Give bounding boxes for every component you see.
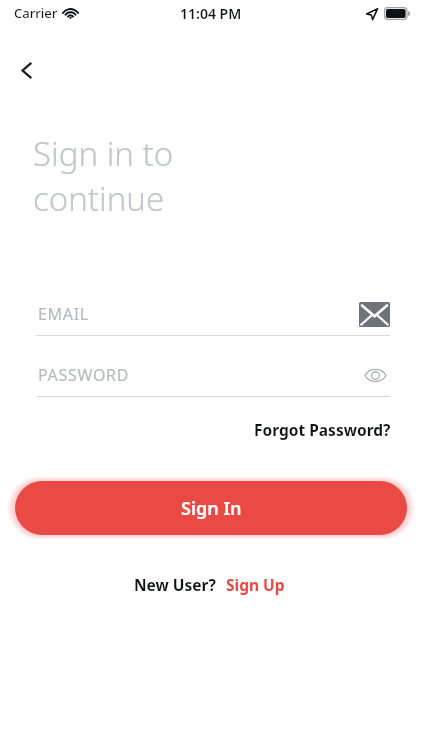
staticText: Sign in to bbox=[33, 131, 174, 176]
button[interactable]: Show password bbox=[360, 360, 390, 390]
button[interactable]: Forgot Password? bbox=[251, 414, 394, 445]
staticText: New User? bbox=[134, 574, 216, 595]
button[interactable]: EMAIL bbox=[36, 293, 390, 335]
button[interactable]: Back bbox=[5, 48, 49, 92]
button[interactable]: Sign Up bbox=[223, 569, 288, 600]
staticText: Sign In bbox=[181, 496, 242, 521]
staticText: Carrier bbox=[14, 4, 58, 22]
staticText: continue bbox=[33, 176, 165, 221]
staticText: Forgot Password? bbox=[254, 419, 391, 440]
staticText: EMAIL bbox=[38, 303, 89, 325]
staticText: PASSWORD bbox=[38, 364, 130, 386]
staticText: 11:04 PM bbox=[180, 4, 242, 23]
staticText: Sign Up bbox=[226, 574, 285, 595]
button[interactable]: PASSWORD bbox=[36, 354, 390, 396]
button[interactable]: Sign In bbox=[15, 481, 407, 535]
